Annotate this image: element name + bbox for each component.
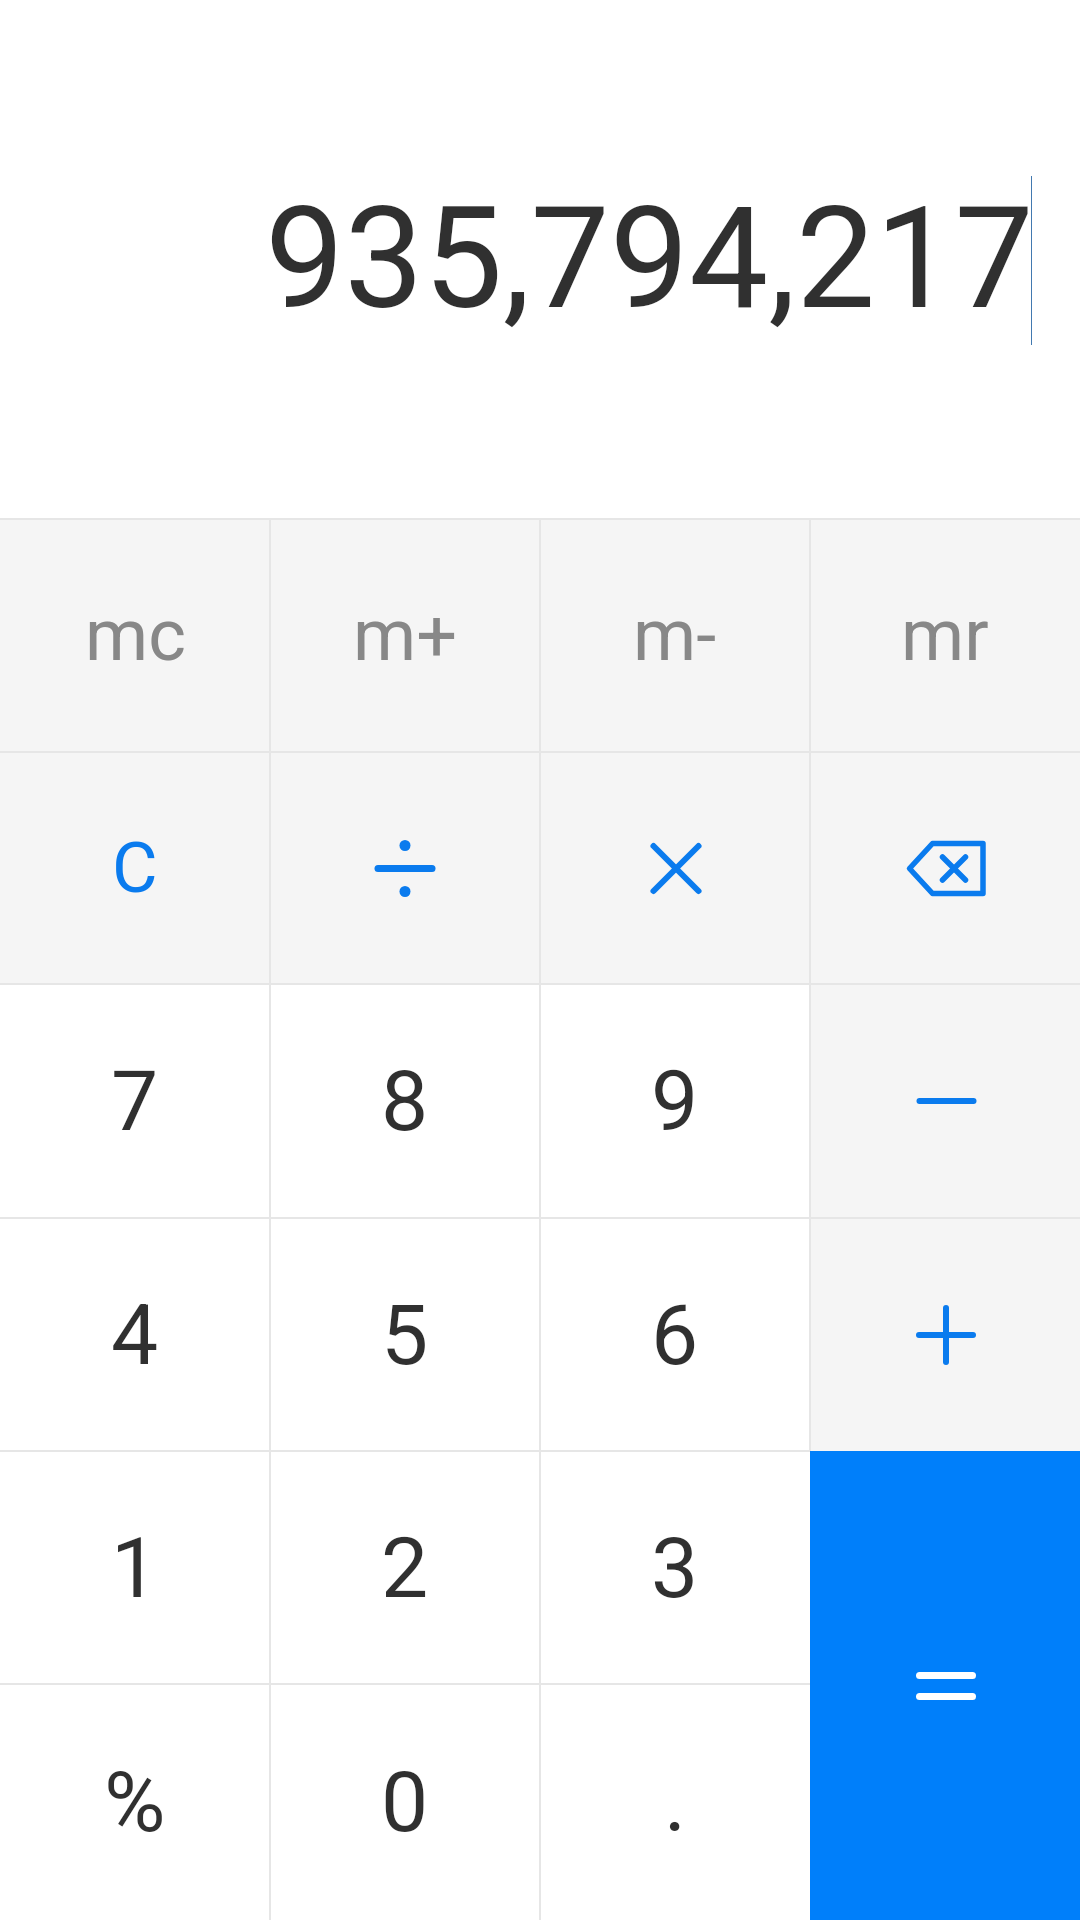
staticText: 7 bbox=[111, 1052, 159, 1150]
button[interactable]: Backspace bbox=[810, 752, 1080, 984]
button[interactable]: 6 bbox=[540, 1218, 810, 1451]
staticText: 5 bbox=[381, 1286, 429, 1384]
button[interactable]: Divide bbox=[270, 752, 540, 984]
button[interactable]: 1 bbox=[0, 1451, 270, 1684]
button[interactable]: % bbox=[0, 1684, 270, 1920]
button[interactable]: 9 bbox=[540, 984, 810, 1218]
button[interactable]: 2 bbox=[270, 1451, 540, 1684]
button[interactable]: m- bbox=[540, 518, 810, 752]
staticText: m+ bbox=[353, 593, 457, 677]
button[interactable]: 8 bbox=[270, 984, 540, 1218]
button[interactable]: 5 bbox=[270, 1218, 540, 1451]
staticText: 3 bbox=[651, 1519, 699, 1617]
button[interactable]: Minus bbox=[810, 984, 1080, 1218]
button[interactable]: Multiply bbox=[540, 752, 810, 984]
button[interactable]: C bbox=[0, 752, 270, 984]
button[interactable]: 3 bbox=[540, 1451, 810, 1684]
button[interactable]: 4 bbox=[0, 1218, 270, 1451]
staticText: mr bbox=[901, 593, 989, 677]
button[interactable]: m+ bbox=[270, 518, 540, 752]
staticText: 4 bbox=[111, 1286, 159, 1384]
staticText: 6 bbox=[651, 1286, 699, 1384]
staticText: % bbox=[104, 1753, 166, 1851]
staticText: C bbox=[112, 827, 158, 909]
staticText: 2 bbox=[381, 1519, 429, 1617]
button[interactable]: mc bbox=[0, 518, 270, 752]
staticText: 935,794,217 bbox=[265, 176, 1034, 341]
staticText: . bbox=[664, 1753, 687, 1851]
staticText: 0 bbox=[381, 1753, 429, 1851]
staticText: 9 bbox=[651, 1052, 699, 1150]
button[interactable]: mr bbox=[810, 518, 1080, 752]
staticText: 8 bbox=[381, 1052, 429, 1150]
button[interactable]: 7 bbox=[0, 984, 270, 1218]
button[interactable]: Plus bbox=[810, 1218, 1080, 1451]
staticText: mc bbox=[85, 593, 186, 677]
button[interactable]: . bbox=[540, 1684, 810, 1920]
staticText: m- bbox=[633, 593, 717, 677]
staticText: 1 bbox=[111, 1519, 159, 1617]
button[interactable]: Equals bbox=[810, 1451, 1080, 1920]
button[interactable]: 0 bbox=[270, 1684, 540, 1920]
